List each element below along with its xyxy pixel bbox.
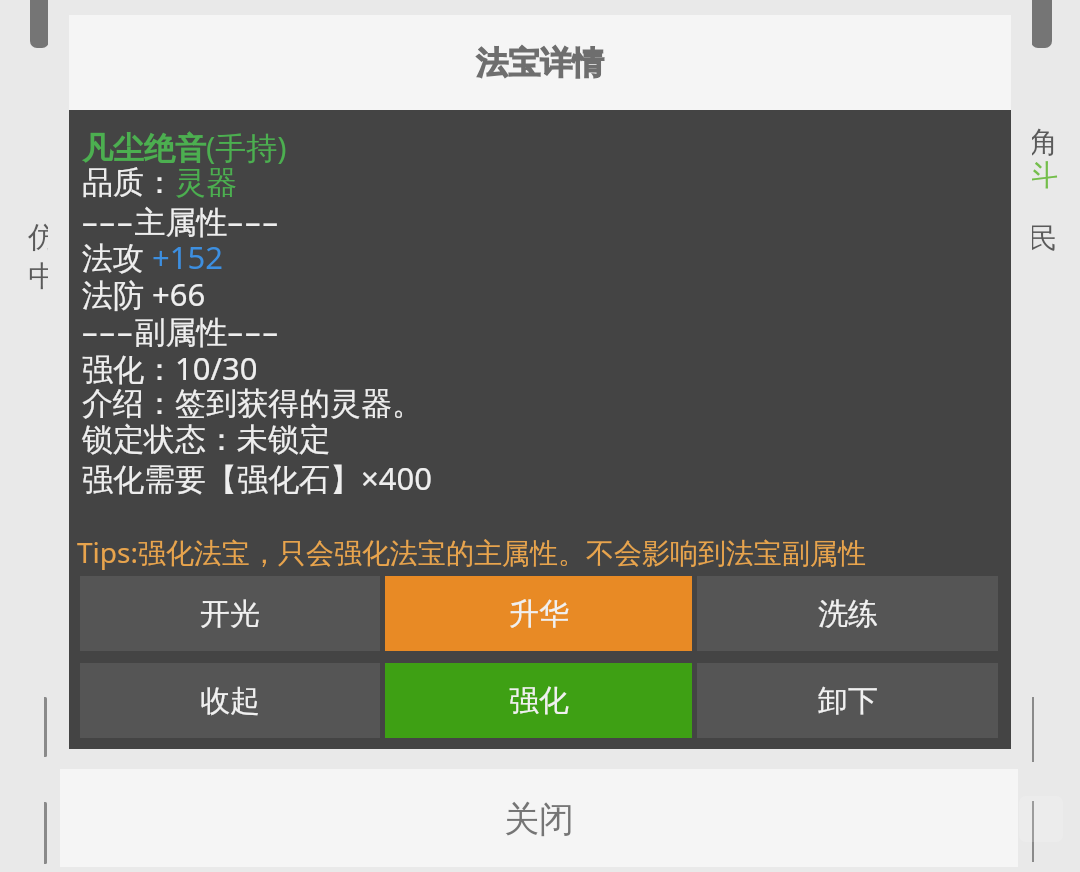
button[interactable]: 关闭 bbox=[60, 769, 1018, 867]
staticText: 锁定状态：未锁定 bbox=[82, 420, 330, 459]
staticText: Tips:强化法宝，只会强化法宝的主属性。不会影响到法宝副属性 bbox=[77, 533, 866, 571]
staticText: 斗 bbox=[1029, 157, 1058, 194]
staticText: 法宝详情 bbox=[476, 43, 604, 83]
staticText: 凡尘绝音(手持) bbox=[82, 126, 287, 168]
staticText: 收起 bbox=[200, 682, 260, 720]
button[interactable]: 开光 bbox=[80, 576, 380, 651]
staticText: 强化：10/30 bbox=[82, 347, 258, 389]
staticText: –––主属性––– bbox=[82, 200, 280, 242]
staticText: 开光 bbox=[200, 595, 260, 633]
staticText: 强化 bbox=[509, 682, 569, 720]
staticText: 强化需要【强化石】×400 bbox=[82, 457, 432, 499]
button[interactable]: 强化 bbox=[385, 663, 692, 738]
staticText: 中 bbox=[28, 258, 57, 295]
button[interactable]: 卸下 bbox=[697, 663, 998, 738]
staticText: 洗练 bbox=[818, 595, 878, 633]
staticText: 介绍：签到获得的灵器。 bbox=[82, 384, 423, 423]
staticText: 升华 bbox=[509, 595, 569, 633]
button[interactable]: 升华 bbox=[385, 576, 692, 651]
staticText: 关闭 bbox=[504, 797, 574, 841]
staticText: 仿 bbox=[28, 219, 57, 256]
staticText: –––副属性––– bbox=[82, 310, 280, 352]
staticText: 法攻 +152 bbox=[82, 236, 223, 278]
button[interactable]: 洗练 bbox=[697, 576, 998, 651]
staticText: 角 bbox=[1029, 124, 1058, 161]
staticText: 品质：灵器 bbox=[82, 163, 237, 202]
button[interactable]: 收起 bbox=[80, 663, 380, 738]
staticText: 法防 +66 bbox=[82, 273, 206, 315]
staticText: 民 bbox=[1029, 220, 1058, 257]
staticText: 卸下 bbox=[818, 682, 878, 720]
